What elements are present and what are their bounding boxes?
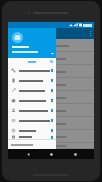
button[interactable]	[8, 65, 56, 75]
button[interactable]: Recent apps	[71, 150, 79, 158]
button[interactable]	[8, 85, 56, 95]
button[interactable]	[8, 104, 94, 117]
button[interactable]	[8, 75, 56, 85]
button[interactable]: Home	[47, 150, 55, 158]
button[interactable]	[8, 135, 56, 139]
button[interactable]	[8, 91, 94, 104]
button[interactable]	[8, 125, 56, 135]
button[interactable]: More options	[89, 30, 92, 37]
button[interactable]	[8, 28, 56, 58]
button[interactable]	[8, 39, 94, 52]
button[interactable]	[8, 117, 94, 130]
button[interactable]	[8, 105, 56, 115]
button[interactable]	[8, 140, 56, 149]
button[interactable]	[8, 95, 56, 105]
button[interactable]	[8, 143, 94, 149]
button[interactable]	[8, 52, 94, 65]
button[interactable]	[8, 78, 94, 91]
button[interactable]	[8, 58, 56, 65]
button[interactable]	[8, 130, 94, 143]
button[interactable]: Back	[24, 150, 32, 158]
button[interactable]	[8, 65, 94, 78]
button[interactable]	[8, 115, 56, 125]
